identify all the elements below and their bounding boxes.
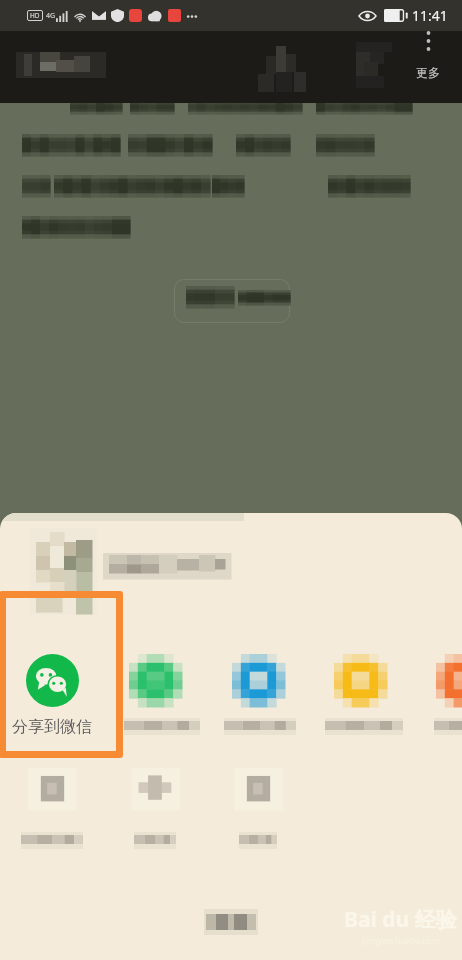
button[interactable]: 分享 xyxy=(104,642,206,737)
button[interactable]: 分享 xyxy=(104,756,206,851)
staticText: 分享到微信 xyxy=(12,717,92,737)
button[interactable]: 分享 xyxy=(1,756,103,851)
button[interactable]: 分享 xyxy=(309,642,411,737)
button[interactable]: 更多 xyxy=(402,26,454,86)
button[interactable]: 分享 xyxy=(207,642,309,737)
button[interactable]: 分享 xyxy=(411,642,462,737)
staticText: HD xyxy=(30,11,40,20)
button[interactable]: 分享 xyxy=(207,756,309,851)
button[interactable]: 分享到微信 xyxy=(1,642,103,737)
staticText: Bai du 经验 xyxy=(344,905,457,934)
staticText: 更多 xyxy=(416,65,440,80)
staticText: 11:41 xyxy=(412,6,448,25)
button[interactable] xyxy=(174,279,290,323)
button[interactable] xyxy=(0,898,462,946)
staticText: 4G xyxy=(46,11,56,21)
